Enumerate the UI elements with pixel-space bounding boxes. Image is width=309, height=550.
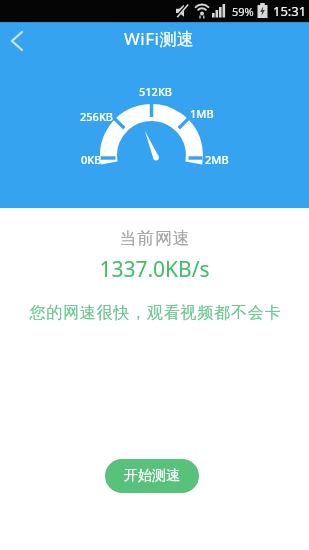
button[interactable]: 开始测速 xyxy=(105,459,199,493)
staticText: 1MB xyxy=(190,106,214,121)
staticText: 15:31 xyxy=(273,2,307,20)
staticText: 59% xyxy=(232,4,254,19)
staticText: 0KB xyxy=(81,152,102,167)
staticText: 当前网速 xyxy=(119,228,191,249)
staticText: WiFi测速 xyxy=(124,27,195,50)
staticText: 您的网速很快，观看视频都不会卡 xyxy=(29,303,281,323)
staticText: 2MB xyxy=(205,152,229,167)
button[interactable] xyxy=(6,28,32,54)
staticText: 1337.0KB/s xyxy=(99,255,210,283)
staticText: 开始测速 xyxy=(124,467,180,485)
staticText: 256KB xyxy=(80,109,114,124)
staticText: 512KB xyxy=(139,84,173,99)
